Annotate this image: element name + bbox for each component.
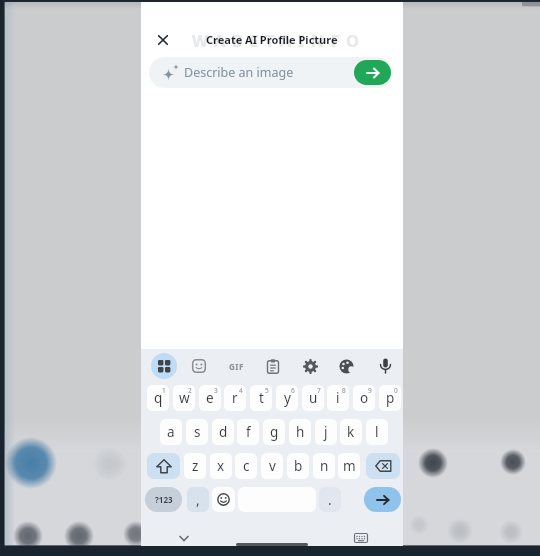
staticText: 0 xyxy=(394,386,398,395)
staticText: w xyxy=(179,389,190,407)
button[interactable]: n xyxy=(313,453,335,479)
button[interactable]: GIF xyxy=(222,352,250,380)
button[interactable]: d xyxy=(212,419,234,445)
button[interactable]: l xyxy=(366,419,388,445)
button[interactable] xyxy=(332,352,360,380)
staticText: 2 xyxy=(188,386,192,395)
staticText: 4 xyxy=(239,386,243,395)
staticText: y xyxy=(284,389,291,407)
button[interactable] xyxy=(371,352,399,380)
staticText: . xyxy=(328,491,332,509)
staticText: p xyxy=(386,389,395,407)
staticText: u xyxy=(309,389,318,407)
button[interactable] xyxy=(366,453,400,479)
button[interactable]: Describe an image xyxy=(149,57,393,88)
staticText: m xyxy=(343,457,356,475)
button[interactable]: u xyxy=(302,385,324,411)
button[interactable] xyxy=(259,352,287,380)
button[interactable]: y xyxy=(276,385,298,411)
staticText: e xyxy=(206,389,214,407)
staticText: 9 xyxy=(368,386,372,395)
button[interactable] xyxy=(353,530,369,546)
button[interactable]: g xyxy=(263,419,285,445)
button[interactable]: t xyxy=(250,385,272,411)
staticText: WABETAINFO xyxy=(192,29,366,49)
button[interactable] xyxy=(354,60,391,85)
button[interactable] xyxy=(212,487,235,512)
button[interactable] xyxy=(364,487,401,512)
staticText: 3 xyxy=(214,386,218,395)
staticText: t xyxy=(259,389,264,407)
button[interactable]: k xyxy=(340,419,362,445)
button[interactable] xyxy=(185,352,213,380)
button[interactable]: q xyxy=(147,385,169,411)
button[interactable]: o xyxy=(353,385,375,411)
button[interactable] xyxy=(154,31,171,48)
button[interactable]: e xyxy=(199,385,221,411)
staticText: 6 xyxy=(291,386,295,395)
staticText: c xyxy=(243,457,250,475)
button[interactable] xyxy=(176,530,192,546)
button[interactable]: , xyxy=(187,487,209,512)
staticText: Create AI Profile Picture xyxy=(206,32,338,47)
staticText: Describe an image xyxy=(184,64,294,81)
staticText: 7 xyxy=(317,386,321,395)
staticText: v xyxy=(269,457,276,475)
staticText: , xyxy=(196,491,200,509)
staticText: s xyxy=(194,423,201,441)
button[interactable]: w xyxy=(173,385,195,411)
button[interactable]: c xyxy=(235,453,257,479)
button[interactable]: r xyxy=(224,385,246,411)
staticText: z xyxy=(192,457,199,475)
button[interactable]: f xyxy=(237,419,259,445)
staticText: a xyxy=(167,423,175,441)
button[interactable]: s xyxy=(186,419,208,445)
staticText: h xyxy=(296,423,305,441)
staticText: q xyxy=(154,389,163,407)
button[interactable] xyxy=(151,353,177,379)
staticText: k xyxy=(347,423,355,441)
staticText: GIF xyxy=(229,361,244,372)
staticText: n xyxy=(320,457,329,475)
button[interactable]: v xyxy=(261,453,283,479)
staticText: 8 xyxy=(342,386,346,395)
button[interactable]: z xyxy=(184,453,206,479)
staticText: r xyxy=(232,389,238,407)
staticText: b xyxy=(294,457,303,475)
staticText: g xyxy=(270,423,279,441)
button[interactable]: i xyxy=(327,385,349,411)
button[interactable]: . xyxy=(319,487,341,512)
button[interactable]: a xyxy=(160,419,182,445)
button[interactable]: j xyxy=(315,419,337,445)
staticText: 5 xyxy=(265,386,269,395)
button[interactable]: h xyxy=(289,419,311,445)
staticText: f xyxy=(246,423,251,441)
button[interactable]: p xyxy=(379,385,401,411)
staticText: x xyxy=(217,457,225,475)
staticText: d xyxy=(219,423,228,441)
staticText: j xyxy=(324,423,328,441)
button[interactable] xyxy=(296,352,324,380)
staticText: ?123 xyxy=(155,494,173,505)
staticText: l xyxy=(375,423,379,441)
staticText: 1 xyxy=(162,386,166,395)
button[interactable]: x xyxy=(210,453,232,479)
button[interactable]: ?123 xyxy=(145,487,182,512)
button[interactable]: m xyxy=(338,453,360,479)
staticText: i xyxy=(336,389,340,407)
staticText: o xyxy=(360,389,369,407)
button[interactable]: b xyxy=(287,453,309,479)
button[interactable] xyxy=(147,453,180,479)
